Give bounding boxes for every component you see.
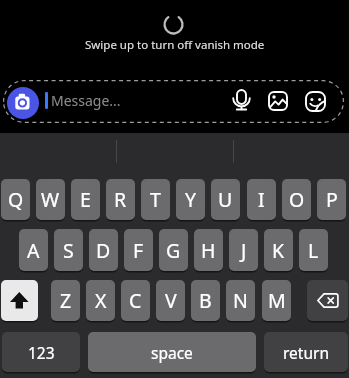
staticText: W [41, 186, 60, 213]
button[interactable]: U [211, 179, 240, 220]
staticText: R [114, 186, 127, 213]
staticText: A [27, 237, 40, 264]
button[interactable] [307, 280, 348, 321]
button[interactable]: N [226, 280, 255, 321]
button[interactable]: C [121, 280, 150, 321]
staticText: B [199, 287, 212, 314]
button[interactable]: E [71, 179, 100, 220]
button[interactable]: B [191, 280, 220, 321]
button[interactable]: Z [51, 280, 80, 321]
button[interactable]: V [156, 280, 185, 321]
staticText: C [129, 287, 142, 314]
staticText: Message... [51, 91, 121, 110]
staticText: U [218, 186, 233, 213]
button[interactable]: space [88, 332, 256, 372]
staticText: E [80, 186, 91, 213]
button[interactable]: W [36, 179, 65, 220]
button[interactable]: 123 [2, 332, 80, 372]
button[interactable]: A [19, 229, 48, 271]
staticText: F [133, 237, 144, 264]
button[interactable]: D [89, 229, 118, 271]
button[interactable]: S [54, 229, 83, 271]
staticText: Swipe up to turn off vanish mode [85, 37, 265, 53]
button[interactable] [305, 91, 326, 112]
staticText: H [201, 237, 216, 264]
button[interactable] [230, 88, 253, 112]
staticText: space [151, 342, 193, 363]
staticText: V [165, 287, 177, 314]
button[interactable]: Y [176, 179, 205, 220]
button[interactable]: H [194, 229, 223, 271]
staticText: L [308, 237, 319, 264]
staticText: I [258, 186, 265, 213]
button[interactable]: T [141, 179, 170, 220]
button[interactable]: Message... [51, 79, 181, 121]
staticText: G [166, 237, 181, 264]
staticText: Y [185, 186, 197, 213]
staticText: T [150, 186, 161, 213]
staticText: return [283, 342, 329, 363]
button[interactable]: G [159, 229, 188, 271]
button[interactable]: I [247, 179, 276, 220]
button[interactable]: M [262, 280, 291, 321]
staticText: 123 [28, 342, 55, 363]
button[interactable]: X [86, 280, 115, 321]
button[interactable]: R [106, 179, 135, 220]
button[interactable]: K [264, 229, 293, 271]
staticText: P [326, 186, 338, 213]
button[interactable] [1, 280, 38, 321]
staticText: K [272, 237, 285, 264]
staticText: S [63, 237, 74, 264]
button[interactable]: J [229, 229, 258, 271]
button[interactable] [7, 87, 39, 119]
staticText: D [96, 237, 111, 264]
staticText: Q [8, 186, 24, 213]
staticText: O [289, 186, 305, 213]
button[interactable]: O [282, 179, 311, 220]
staticText: J [241, 237, 247, 264]
button[interactable]: P [317, 179, 346, 220]
staticText: N [233, 287, 248, 314]
button[interactable]: return [264, 332, 348, 372]
button[interactable] [268, 91, 288, 111]
staticText: X [95, 287, 107, 314]
staticText: Z [60, 287, 72, 314]
staticText: M [268, 287, 286, 314]
button[interactable]: F [124, 229, 153, 271]
button[interactable]: L [299, 229, 328, 271]
button[interactable]: Q [1, 179, 30, 220]
